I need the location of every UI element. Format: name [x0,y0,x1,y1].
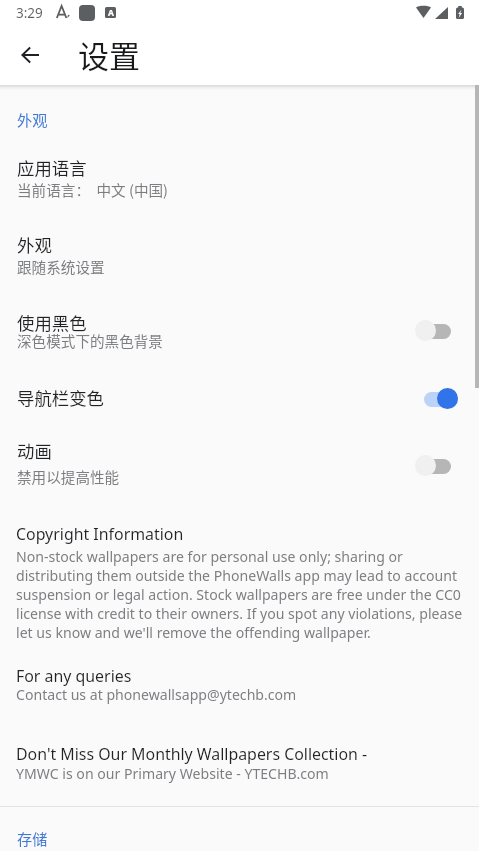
staticText: 跟随系统设置 [17,256,105,277]
button[interactable]: 使用黑色 [0,300,479,362]
button[interactable]: For any queries [0,660,479,716]
button[interactable]: 存储 [0,823,479,851]
staticText: Non-stock wallpapers are for personal us… [16,547,463,642]
button[interactable]: Back [8,33,52,77]
staticText: 设置 [78,32,140,77]
staticText: 外观 [17,232,52,257]
staticText: 动画 [17,438,52,463]
button[interactable]: 应用语言 [0,144,479,214]
button[interactable]: 导航栏变色 [0,372,479,424]
staticText: 深色模式下的黑色背景 [17,330,163,351]
button[interactable]: 动画 [0,430,479,498]
button[interactable]: 外观 [0,222,479,290]
staticText: A [108,7,114,18]
staticText: For any queries [16,665,132,687]
staticText: 3:29 [16,4,43,22]
button[interactable]: Copyright Information [0,518,479,643]
staticText: 应用语言 [17,155,87,180]
staticText: 外观 [17,108,48,130]
button[interactable]: Don't Miss Our Monthly Wallpapers Collec… [0,738,479,794]
staticText: 禁用以提高性能 [17,466,120,487]
staticText: Copyright Information [16,523,184,545]
staticText: YMWC is on our Primary Website - YTECHB.… [16,764,329,783]
staticText: 当前语言： 中文 (中国) [17,179,169,200]
staticText: 使用黑色 [17,310,87,335]
staticText: Don't Miss Our Monthly Wallpapers Collec… [16,743,368,765]
staticText: Contact us at phonewallsapp@ytechb.com [16,685,297,704]
staticText: 存储 [17,827,48,849]
staticText: 导航栏变色 [17,385,104,410]
button[interactable]: 外观 [0,104,479,134]
